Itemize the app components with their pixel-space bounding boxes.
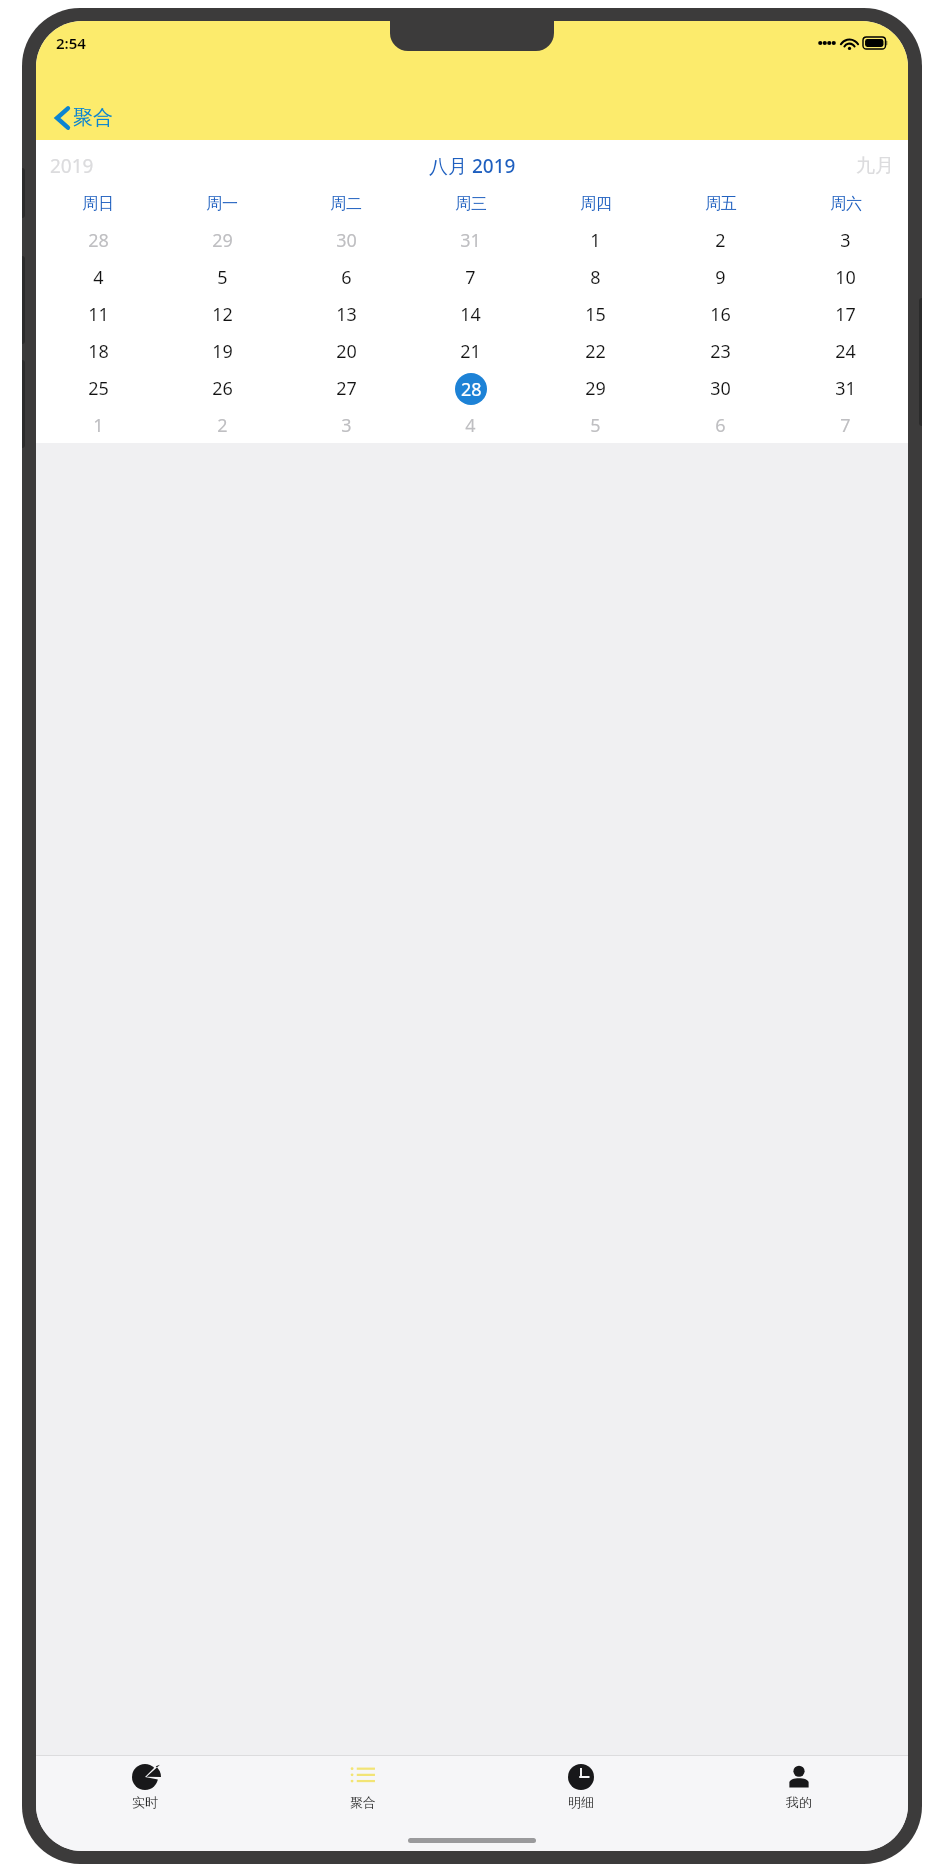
button[interactable]: 9 <box>658 259 783 296</box>
button[interactable]: 聚合 <box>254 1762 472 1812</box>
button[interactable]: 24 <box>783 333 908 370</box>
button[interactable]: 6 <box>658 407 783 443</box>
staticText: 周六 <box>830 194 862 214</box>
staticText: 2 <box>217 413 228 438</box>
staticText: 周五 <box>705 194 737 214</box>
staticText: 25 <box>88 376 109 401</box>
staticText: 20 <box>336 339 357 364</box>
button[interactable]: 8 <box>533 259 658 296</box>
button[interactable]: 12 <box>160 296 284 333</box>
staticText: 周二 <box>330 194 362 214</box>
staticText: 我的 <box>786 1794 812 1810</box>
other: 实时 <box>132 1764 158 1790</box>
button[interactable]: 29 <box>533 370 658 407</box>
button[interactable]: 实时 <box>36 1762 254 1812</box>
button[interactable]: 我的 <box>690 1762 908 1812</box>
staticText: 5 <box>217 265 228 290</box>
button[interactable]: 3 <box>783 222 908 259</box>
staticText: 2 <box>715 228 726 253</box>
staticText: 1 <box>93 413 104 438</box>
button[interactable]: 5 <box>533 407 658 443</box>
button[interactable]: 4 <box>408 407 533 443</box>
button[interactable]: 28 <box>408 370 533 407</box>
button[interactable]: 25 <box>36 370 160 407</box>
button[interactable]: 明细 <box>472 1762 690 1812</box>
button[interactable]: 3 <box>284 407 408 443</box>
button[interactable]: 21 <box>408 333 533 370</box>
staticText: 15 <box>585 302 606 327</box>
staticText: 6 <box>715 413 726 438</box>
staticText: 实时 <box>132 1794 158 1810</box>
button[interactable]: 23 <box>658 333 783 370</box>
button[interactable]: 31 <box>783 370 908 407</box>
staticText: 22 <box>585 339 606 364</box>
button[interactable]: 11 <box>36 296 160 333</box>
staticText: 28 <box>88 228 109 253</box>
button[interactable]: 29 <box>160 222 284 259</box>
staticText: 5 <box>590 413 601 438</box>
staticText: 明细 <box>568 1794 594 1810</box>
button[interactable]: 5 <box>160 259 284 296</box>
staticText: 6 <box>341 265 352 290</box>
button[interactable]: 15 <box>533 296 658 333</box>
staticText: 3 <box>840 228 851 253</box>
staticText: 7 <box>465 265 476 290</box>
staticText: 周四 <box>580 194 612 214</box>
button[interactable]: 14 <box>408 296 533 333</box>
button[interactable]: 13 <box>284 296 408 333</box>
staticText: 12 <box>212 302 233 327</box>
staticText: 2:54 <box>56 33 86 53</box>
button[interactable]: 1 <box>36 407 160 443</box>
staticText: 27 <box>336 376 357 401</box>
button[interactable]: 2 <box>160 407 284 443</box>
button[interactable]: 18 <box>36 333 160 370</box>
button[interactable]: 7 <box>783 407 908 443</box>
staticText: 聚合 <box>350 1794 376 1810</box>
staticText: 1 <box>590 228 601 253</box>
button[interactable]: 30 <box>284 222 408 259</box>
button[interactable]: 27 <box>284 370 408 407</box>
staticText: 31 <box>460 228 481 253</box>
staticText: 九月 <box>856 154 894 178</box>
staticText: 4 <box>93 265 104 290</box>
button[interactable]: 16 <box>658 296 783 333</box>
button[interactable]: 31 <box>408 222 533 259</box>
staticText: 周一 <box>206 194 238 214</box>
staticText: 29 <box>585 376 606 401</box>
staticText: 14 <box>460 302 481 327</box>
staticText: 18 <box>88 339 109 364</box>
button[interactable]: 20 <box>284 333 408 370</box>
button[interactable]: 2 <box>658 222 783 259</box>
staticText: 31 <box>835 376 856 401</box>
staticText: 16 <box>710 302 731 327</box>
staticText: 29 <box>212 228 233 253</box>
staticText: 19 <box>212 339 233 364</box>
staticText: 周日 <box>82 194 114 214</box>
button[interactable]: 4 <box>36 259 160 296</box>
other: 我的 <box>786 1764 812 1790</box>
button[interactable]: 28 <box>36 222 160 259</box>
button[interactable]: 22 <box>533 333 658 370</box>
staticText: 26 <box>212 376 233 401</box>
button[interactable]: 19 <box>160 333 284 370</box>
button[interactable]: 7 <box>408 259 533 296</box>
staticText: 7 <box>840 413 851 438</box>
button[interactable]: 17 <box>783 296 908 333</box>
staticText: 11 <box>88 302 109 327</box>
staticText: 周三 <box>455 194 487 214</box>
staticText: 3 <box>341 413 352 438</box>
button[interactable]: 聚合 <box>50 99 119 136</box>
button[interactable]: 10 <box>783 259 908 296</box>
staticText: 30 <box>710 376 731 401</box>
staticText: 聚合 <box>73 105 113 130</box>
staticText: 28 <box>461 377 482 402</box>
staticText: 23 <box>710 339 731 364</box>
staticText: 24 <box>835 339 856 364</box>
staticText: 21 <box>460 339 481 364</box>
other: 聚合 <box>350 1764 376 1790</box>
button[interactable]: 30 <box>658 370 783 407</box>
staticText: 30 <box>336 228 357 253</box>
button[interactable]: 6 <box>284 259 408 296</box>
button[interactable]: 26 <box>160 370 284 407</box>
button[interactable]: 1 <box>533 222 658 259</box>
